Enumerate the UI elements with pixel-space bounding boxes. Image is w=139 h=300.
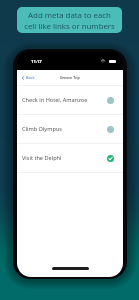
staticText: Visit the Delphi [22,154,62,162]
staticText: Greece Trip [60,75,80,80]
staticText: 11:17 [31,59,42,65]
staticText: Check in Hotel, Amanzoe [22,96,88,104]
staticText: Add meta data to each cell like links or… [17,10,122,31]
staticText: Climb Olympus [22,125,63,133]
button[interactable]: Check in Hotel, Amanzoe [17,86,123,114]
button[interactable]: Add meta data to each cell like links or… [17,7,122,33]
button[interactable]: Visit the Delphi [17,144,123,172]
button[interactable]: Back [17,71,41,84]
staticText: Back [26,75,35,80]
button[interactable]: Climb Olympus [17,115,123,143]
